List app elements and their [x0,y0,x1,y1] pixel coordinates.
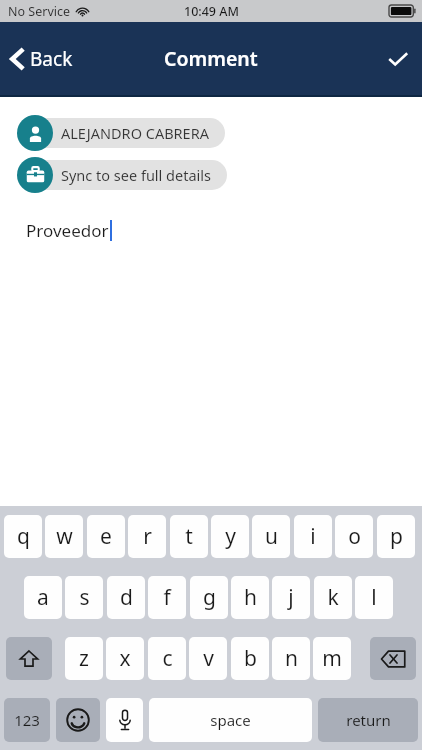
staticText: d [120,583,133,612]
staticText: i [310,522,316,551]
button[interactable]: x [106,637,144,680]
button[interactable]: a [24,576,62,619]
button[interactable]: f [148,576,186,619]
staticText: o [348,522,361,551]
button[interactable]: t [170,515,208,558]
button[interactable]: c [148,637,186,680]
button[interactable]: Proveedor [0,219,422,242]
staticText: y [225,522,236,551]
button[interactable]: k [314,576,352,619]
button[interactable]: b [231,637,269,680]
staticText: q [17,522,30,551]
staticText: z [79,644,89,673]
button[interactable]: Key [370,637,416,680]
staticText: g [203,583,216,612]
staticText: Comment [164,45,258,72]
staticText: No Service [8,3,71,20]
staticText: space [210,710,251,730]
staticText: s [79,583,90,612]
staticText: u [265,522,278,551]
staticText: r [143,522,152,551]
button[interactable]: m [313,637,351,680]
staticText: 10:49 AM [184,3,239,20]
button[interactable]: p [377,515,415,558]
button[interactable]: return [318,698,418,742]
button[interactable]: v [189,637,227,680]
button[interactable]: y [211,515,249,558]
staticText: a [37,583,49,612]
staticText: Back [30,46,73,72]
staticText: c [162,644,173,673]
staticText: m [322,644,342,673]
staticText: t [185,522,193,551]
staticText: j [288,583,294,612]
button[interactable]: space [149,698,312,742]
button[interactable]: o [335,515,373,558]
staticText: e [100,522,112,551]
button[interactable]: Key [56,698,100,742]
staticText: ALEJANDRO CABRERA [61,123,209,143]
staticText: f [163,583,171,612]
staticText: x [119,644,131,673]
staticText: l [371,583,377,612]
button[interactable]: i [294,515,332,558]
button[interactable]: h [231,576,269,619]
staticText: return [346,710,391,730]
staticText: h [244,583,257,612]
button[interactable]: s [65,576,103,619]
staticText: p [390,522,403,551]
button[interactable]: g [190,576,228,619]
button[interactable]: 123 [4,698,50,742]
button[interactable]: Sync to see full details [17,157,227,193]
button[interactable]: Back [0,38,85,80]
button[interactable]: Key [106,698,143,742]
staticText: Sync to see full details [61,165,211,185]
button[interactable]: z [65,637,103,680]
button[interactable]: j [272,576,310,619]
button[interactable]: Key [6,637,52,680]
button[interactable]: n [272,637,310,680]
button[interactable]: d [107,576,145,619]
staticText: w [56,522,73,551]
staticText: Proveedor [26,219,109,242]
staticText: v [203,644,214,673]
button[interactable]: q [4,515,42,558]
button[interactable]: Save comment [374,39,422,79]
button[interactable]: ALEJANDRO CABRERA [17,115,225,151]
button[interactable]: w [45,515,83,558]
staticText: k [327,583,339,612]
button[interactable]: l [355,576,393,619]
staticText: 123 [14,710,40,730]
staticText: b [244,644,257,673]
staticText: n [285,644,298,673]
button[interactable]: r [128,515,166,558]
button[interactable]: e [87,515,125,558]
button[interactable]: u [252,515,290,558]
